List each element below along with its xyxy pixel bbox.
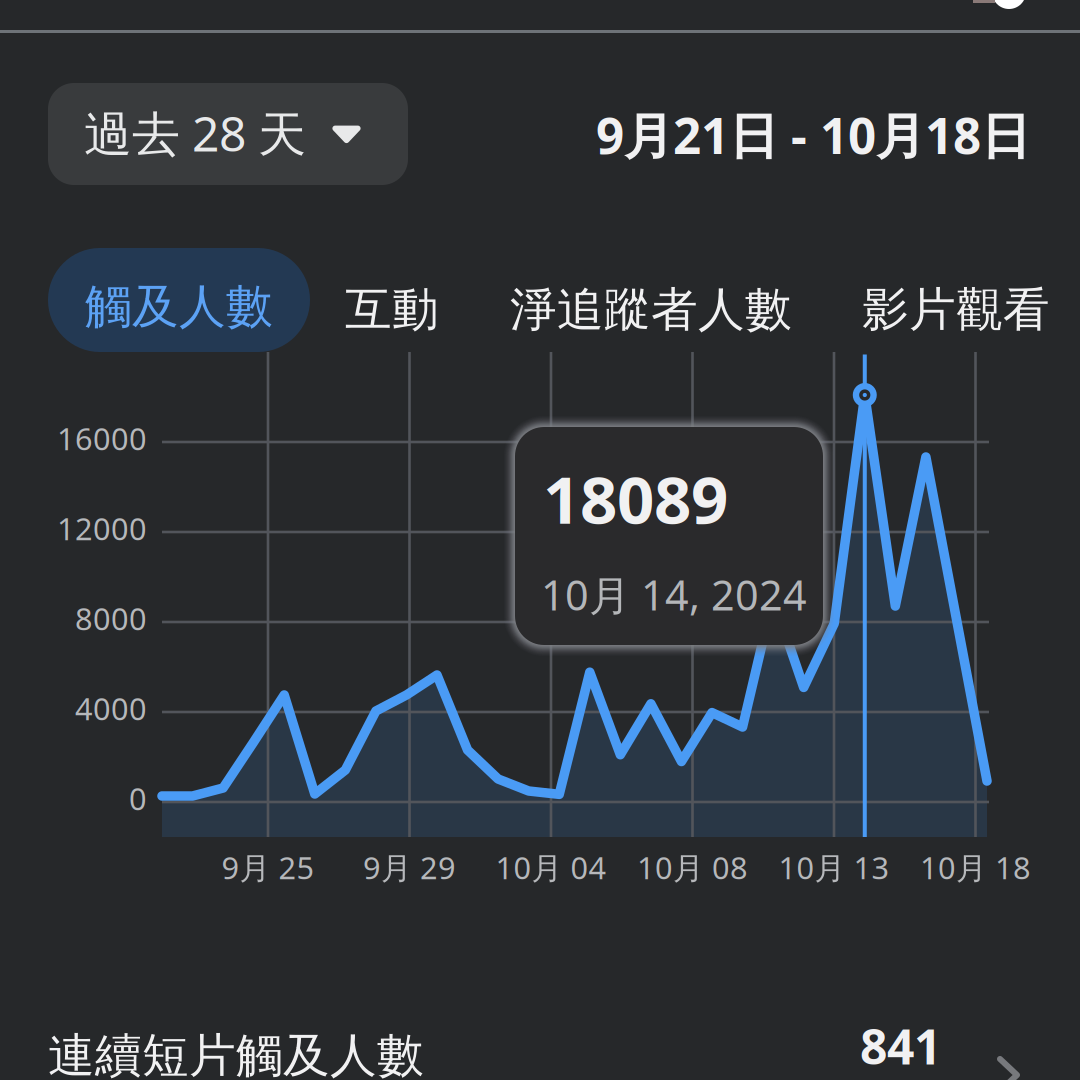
staticText: 10月 14, 2024 [541,567,807,622]
button[interactable]: 觸及人數 [48,248,310,352]
button[interactable]: 過去 28 天 [48,83,408,185]
staticText: 10月 04 [495,847,606,888]
staticText: 10月 13 [778,847,889,888]
staticText: 連續短片觸及人數 [48,1027,424,1080]
staticText: 淨追蹤者人數 [510,281,792,338]
staticText: 4000 [75,688,147,729]
staticText: 9月21日 - 10月18日 [596,102,1030,167]
staticText: 8000 [75,598,147,639]
button[interactable]: 淨追蹤者人數 [510,281,792,338]
button[interactable]: 互動 [345,281,439,338]
staticText: 過去 28 天 [84,101,306,165]
button[interactable]: 連續短片觸及人數 [0,990,1080,1080]
button[interactable]: 影片觀看次數 [862,281,1051,337]
staticText: 互動 [345,281,439,338]
staticText: 16000 [57,418,147,459]
staticText: 0 [129,778,147,819]
staticText: 18089 [543,455,728,542]
staticText: 10月 18 [920,847,1031,888]
staticText: 影片觀看次數 [862,281,1080,338]
staticText: 12000 [57,508,147,549]
staticText: 10月 08 [637,847,748,888]
staticText: 觸及人數 [85,278,273,335]
staticText: 9月 29 [363,847,456,888]
staticText: 9月 25 [221,847,314,888]
staticText: 841 [860,1014,941,1078]
